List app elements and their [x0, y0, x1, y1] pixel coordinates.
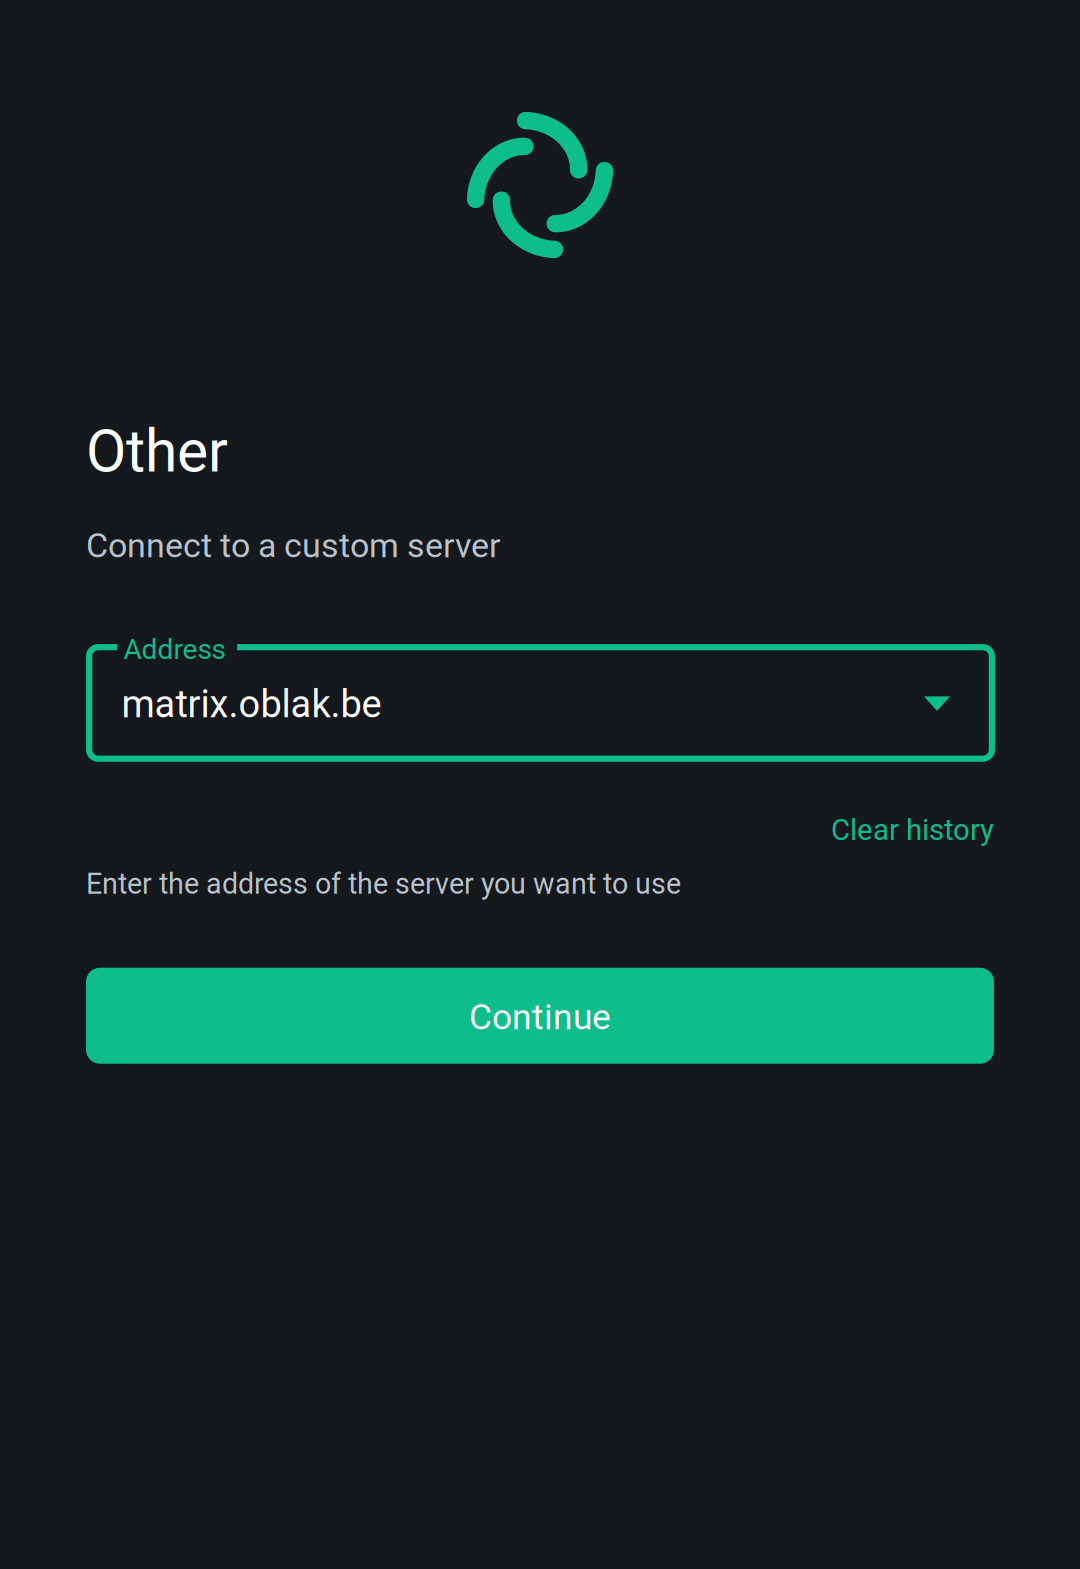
button[interactable]: Address, matrix.oblak.be	[86, 644, 995, 762]
staticText: Connect to a custom server	[86, 526, 501, 566]
button[interactable]: Continue	[86, 968, 994, 1064]
staticText: Clear history	[831, 813, 994, 847]
staticText: Continue	[469, 997, 611, 1038]
staticText: Enter the address of the server you want…	[86, 867, 681, 901]
staticText: matrix.oblak.be	[121, 682, 381, 726]
button[interactable]: Clear history	[831, 813, 994, 847]
staticText: Other	[86, 417, 228, 486]
staticText: Address	[123, 633, 225, 666]
